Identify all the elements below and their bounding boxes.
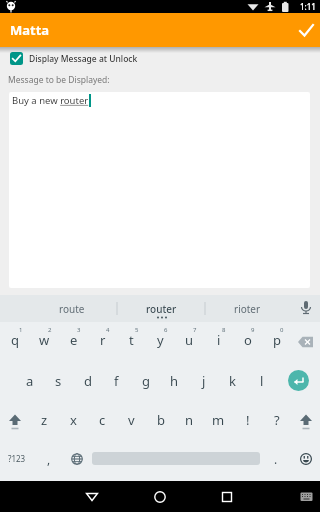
button[interactable] bbox=[291, 401, 320, 441]
staticText: . bbox=[274, 451, 278, 467]
button[interactable]: m bbox=[204, 401, 233, 441]
button[interactable]: d bbox=[73, 361, 102, 401]
staticText: d bbox=[84, 372, 92, 390]
staticText: q bbox=[11, 331, 19, 349]
staticText: h bbox=[170, 372, 179, 390]
staticText: c bbox=[99, 411, 106, 429]
staticText: Matta bbox=[10, 21, 50, 39]
staticText: f bbox=[114, 372, 119, 390]
button[interactable]: o bbox=[233, 322, 262, 361]
staticText: b bbox=[157, 411, 165, 429]
button[interactable]: Display Message at Unlock bbox=[10, 52, 138, 65]
button[interactable]: k bbox=[218, 361, 247, 401]
button[interactable]: a bbox=[15, 361, 44, 401]
button[interactable]: router bbox=[117, 295, 205, 322]
button[interactable]: e bbox=[59, 322, 88, 361]
staticText: ?123 bbox=[8, 453, 26, 464]
button[interactable]: b bbox=[146, 401, 175, 441]
button[interactable]: n bbox=[175, 401, 204, 441]
button[interactable]: j bbox=[189, 361, 218, 401]
button[interactable] bbox=[64, 441, 89, 476]
button[interactable]: route bbox=[27, 295, 117, 322]
staticText: , bbox=[47, 451, 51, 467]
staticText: p bbox=[273, 331, 281, 349]
staticText: 1 bbox=[19, 326, 23, 334]
staticText: 4 bbox=[106, 326, 110, 334]
button[interactable]: r bbox=[88, 322, 117, 361]
staticText: w bbox=[39, 331, 50, 349]
button[interactable] bbox=[276, 361, 320, 401]
button[interactable]: t bbox=[117, 322, 146, 361]
staticText: j bbox=[202, 372, 206, 390]
button[interactable]: u bbox=[175, 322, 204, 361]
button[interactable]: ? bbox=[262, 401, 291, 441]
button[interactable]: ! bbox=[233, 401, 262, 441]
staticText: 5 bbox=[135, 326, 139, 334]
staticText: z bbox=[41, 411, 48, 429]
button[interactable] bbox=[0, 401, 30, 441]
staticText: o bbox=[244, 331, 252, 349]
button[interactable]: l bbox=[247, 361, 276, 401]
staticText: 0 bbox=[280, 326, 284, 334]
button[interactable] bbox=[292, 13, 320, 47]
button[interactable]: g bbox=[131, 361, 160, 401]
staticText: l bbox=[260, 372, 264, 390]
button[interactable]: rioter bbox=[205, 295, 290, 322]
staticText: 3 bbox=[77, 326, 81, 334]
staticText: 2 bbox=[48, 326, 52, 334]
staticText: 8 bbox=[222, 326, 226, 334]
button[interactable] bbox=[143, 481, 177, 512]
staticText: 9 bbox=[251, 326, 255, 334]
staticText: k bbox=[229, 372, 236, 390]
staticText: r bbox=[100, 331, 106, 349]
button[interactable]: Buy a new router bbox=[9, 92, 310, 288]
staticText: a bbox=[26, 372, 34, 390]
button[interactable]: p bbox=[262, 322, 291, 361]
staticText: Message to be Displayed: bbox=[8, 74, 110, 86]
staticText: ? bbox=[274, 411, 280, 429]
button[interactable]: f bbox=[102, 361, 131, 401]
button[interactable]: i bbox=[204, 322, 233, 361]
staticText: t bbox=[129, 331, 134, 349]
button[interactable]: w bbox=[30, 322, 59, 361]
button[interactable]: ?123 bbox=[0, 441, 33, 476]
staticText: x bbox=[70, 411, 77, 429]
button[interactable] bbox=[292, 481, 320, 512]
staticText: v bbox=[128, 411, 135, 429]
button[interactable] bbox=[210, 481, 244, 512]
button[interactable]: v bbox=[117, 401, 146, 441]
staticText: rioter bbox=[234, 302, 261, 316]
button[interactable]: z bbox=[30, 401, 59, 441]
button[interactable]: . bbox=[260, 441, 291, 476]
button[interactable] bbox=[291, 441, 320, 476]
staticText: u bbox=[185, 331, 194, 349]
button[interactable]: x bbox=[59, 401, 88, 441]
staticText: e bbox=[70, 331, 78, 349]
button[interactable]: s bbox=[44, 361, 73, 401]
staticText: 7 bbox=[193, 326, 197, 334]
staticText: route bbox=[59, 302, 85, 316]
staticText: ! bbox=[246, 411, 250, 429]
button[interactable]: y bbox=[146, 322, 175, 361]
staticText: m bbox=[212, 411, 225, 429]
staticText: g bbox=[142, 372, 150, 390]
button[interactable] bbox=[291, 322, 320, 361]
staticText: router bbox=[146, 302, 177, 316]
staticText: n bbox=[185, 411, 194, 429]
staticText: i bbox=[217, 331, 221, 349]
staticText: 1:11 bbox=[300, 1, 316, 12]
staticText: y bbox=[157, 331, 164, 349]
button[interactable]: , bbox=[33, 441, 64, 476]
staticText: s bbox=[55, 372, 62, 390]
staticText: Display Message at Unlock bbox=[29, 53, 138, 65]
button[interactable]: q bbox=[0, 322, 30, 361]
staticText: 6 bbox=[164, 326, 168, 334]
button[interactable]: h bbox=[160, 361, 189, 401]
staticText: Buy a new router bbox=[12, 94, 89, 107]
button[interactable]: c bbox=[88, 401, 117, 441]
button[interactable] bbox=[75, 481, 109, 512]
